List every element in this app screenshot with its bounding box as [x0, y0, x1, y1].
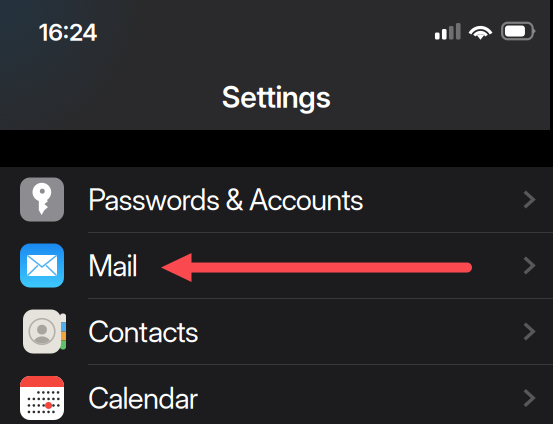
button[interactable]: Contacts	[0, 299, 553, 365]
staticText: 16:24	[38, 17, 98, 46]
button[interactable]: Calendar	[0, 365, 553, 424]
staticText: Calendar	[88, 380, 198, 416]
staticText: Passwords & Accounts	[88, 182, 364, 217]
staticText: Contacts	[88, 314, 199, 349]
button[interactable]: Mail	[0, 233, 553, 299]
staticText: Mail	[88, 248, 138, 283]
staticText: Settings	[222, 79, 331, 115]
button[interactable]: Passwords & Accounts	[0, 167, 553, 233]
